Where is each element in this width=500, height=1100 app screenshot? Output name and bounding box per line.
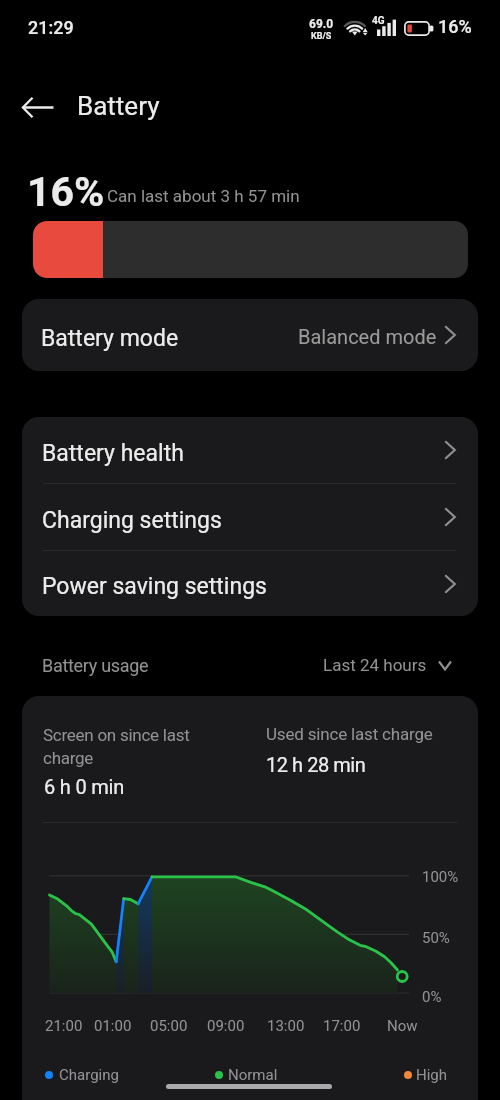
staticText: Normal (228, 1066, 278, 1084)
staticText: Battery mode (41, 325, 179, 352)
staticText: 05:00 (150, 1017, 188, 1035)
button[interactable]: Last 24 hours (323, 655, 452, 675)
staticText: 01:00 (94, 1017, 132, 1035)
staticText: 16% (438, 16, 472, 37)
staticText: 16% (27, 168, 105, 216)
button[interactable]: Normal (215, 1066, 278, 1084)
staticText: Can last about 3 h 57 min (107, 186, 300, 206)
staticText: Screen on since last charge (43, 725, 190, 768)
staticText: 09:00 (207, 1017, 245, 1035)
staticText: Used since last charge (266, 724, 433, 744)
button[interactable]: High (404, 1066, 448, 1084)
staticText: Balanced mode (298, 325, 437, 348)
staticText: KB/S (311, 31, 332, 42)
staticText: Battery health (42, 440, 184, 467)
staticText: Last 24 hours (323, 655, 427, 675)
staticText: 13:00 (267, 1017, 305, 1035)
staticText: 6 h 0 min (44, 775, 125, 798)
staticText: Battery (77, 91, 160, 121)
staticText: 69.0 (309, 17, 334, 31)
button[interactable]: Battery mode (22, 299, 478, 371)
staticText: 100% (422, 868, 459, 886)
button[interactable]: Charging (45, 1066, 119, 1084)
staticText: 4G (372, 15, 385, 27)
staticText: 12 h 28 min (266, 753, 366, 776)
staticText: 21:29 (28, 17, 74, 38)
staticText: 21:00 (45, 1017, 83, 1035)
staticText: Charging settings (42, 507, 222, 534)
staticText: Battery usage (42, 655, 149, 676)
button[interactable]: Power saving settings (22, 551, 478, 616)
staticText: 17:00 (323, 1017, 361, 1035)
button[interactable]: Back (14, 83, 62, 131)
button[interactable]: Battery health (22, 417, 478, 483)
staticText: Now (387, 1017, 418, 1035)
staticText: 0% (422, 988, 442, 1006)
staticText: Power saving settings (42, 573, 267, 600)
staticText: 50% (422, 929, 450, 947)
button[interactable]: Charging settings (22, 484, 478, 550)
staticText: Charging (59, 1066, 119, 1084)
staticText: High (416, 1066, 448, 1084)
